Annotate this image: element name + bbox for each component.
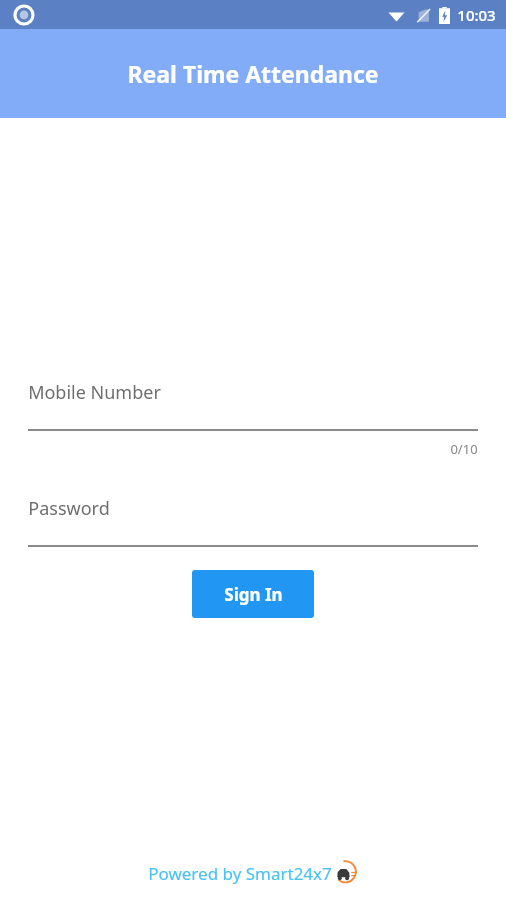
staticText: Real Time Attendance xyxy=(127,58,379,89)
other: Smart24x7 logo xyxy=(332,859,358,885)
staticText: 10:03 xyxy=(457,5,496,25)
other: Screen recording indicator xyxy=(14,5,34,25)
other: No SIM card xyxy=(416,8,431,23)
button[interactable]: Mobile Number xyxy=(28,380,478,431)
other: Wi-Fi xyxy=(388,7,405,24)
button[interactable]: Password xyxy=(28,496,478,547)
staticText: Mobile Number xyxy=(28,380,161,405)
staticText: Password xyxy=(28,496,110,521)
staticText: Sign In xyxy=(224,583,283,606)
button[interactable]: Sign In xyxy=(192,570,314,618)
other: Battery charging xyxy=(439,7,450,24)
staticText: Powered by Smart24x7 xyxy=(148,862,332,885)
staticText: 0/10 xyxy=(450,440,478,458)
